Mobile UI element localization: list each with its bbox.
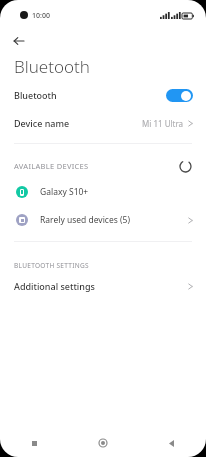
button[interactable]: Bluetooth (0, 80, 206, 110)
staticText: Device name (14, 117, 70, 129)
staticText: BLUETOOTH SETTINGS (14, 261, 89, 270)
staticText: Rarely used devices (5) (40, 214, 130, 226)
staticText: 10:00 (32, 11, 50, 21)
staticText: Galaxy S10+ (40, 186, 89, 198)
button[interactable]: Refresh (177, 158, 193, 174)
button[interactable]: Recents (0, 429, 68, 457)
staticText: Mi 11 Ultra (142, 118, 184, 129)
staticText: AVAILABLE DEVICES (14, 161, 89, 171)
staticText: Additional settings (14, 280, 95, 292)
button[interactable]: Home (68, 429, 137, 457)
button[interactable]: Back (8, 30, 30, 52)
button[interactable]: Additional settings (0, 273, 206, 299)
staticText: Bluetooth (14, 89, 57, 101)
button[interactable]: Device name (0, 110, 206, 136)
staticText: Bluetooth (14, 55, 90, 78)
button[interactable]: Back (137, 429, 206, 457)
button[interactable]: Galaxy S10+ (0, 178, 206, 206)
button[interactable]: Rarely used devices (5) (0, 206, 206, 234)
